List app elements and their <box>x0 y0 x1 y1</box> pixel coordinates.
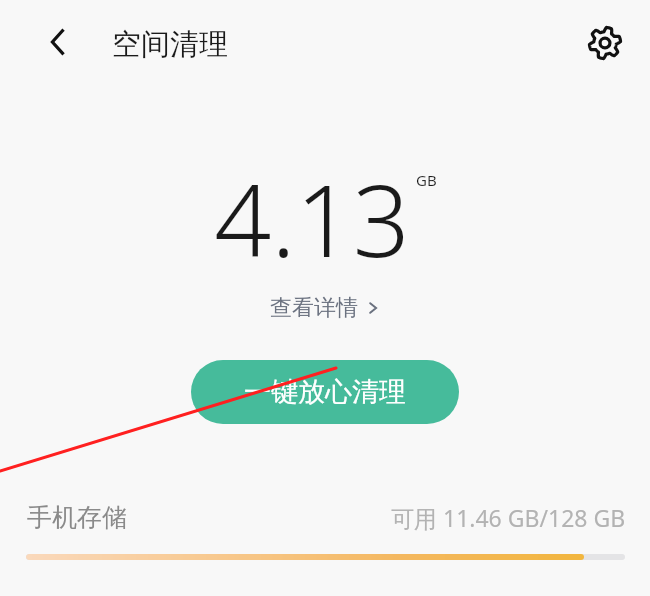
staticText: 手机存储 <box>27 502 127 533</box>
staticText: 可用 11.46 GB/128 GB <box>391 502 626 533</box>
button[interactable]: Settings <box>581 19 629 67</box>
staticText: 4.13 <box>214 150 410 286</box>
button[interactable]: 查看详情 <box>260 290 390 326</box>
staticText: 空间清理 <box>112 26 228 63</box>
button[interactable]: 一键放心清理 <box>191 360 459 424</box>
staticText: 查看详情 <box>270 294 358 322</box>
button[interactable]: 手机存储 <box>0 502 650 533</box>
staticText: GB <box>416 170 437 190</box>
staticText: 一键放心清理 <box>244 375 406 409</box>
button[interactable]: Back <box>34 18 82 66</box>
